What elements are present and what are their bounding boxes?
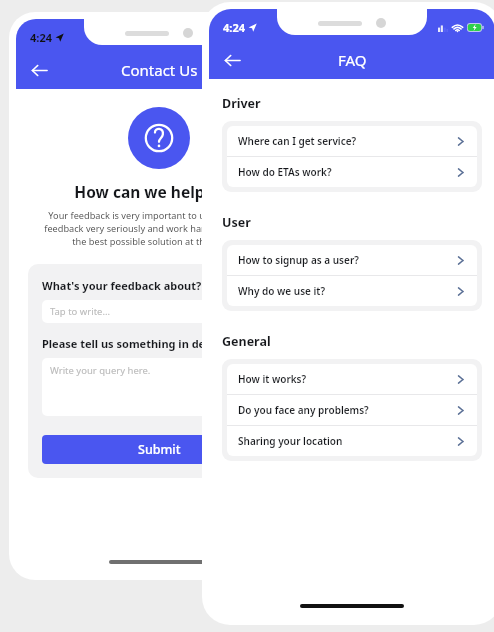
button[interactable]: How do ETAs work?	[227, 157, 477, 187]
staticText: 4:24	[223, 20, 245, 35]
button[interactable]: Write your query here.	[42, 358, 276, 416]
staticText: Do you face any problems?	[238, 403, 455, 417]
staticText: Tap to write...	[50, 305, 111, 318]
staticText: Driver	[222, 95, 261, 112]
button[interactable]: Why do we use it?	[227, 276, 477, 306]
staticText: How it works?	[238, 372, 455, 386]
button[interactable]: How it works?	[227, 364, 477, 394]
button[interactable]: How to signup as a user?	[227, 245, 477, 275]
staticText: How can we help you?	[74, 181, 245, 202]
button[interactable]: Where can I get service?	[227, 126, 477, 156]
staticText: 4:24	[30, 30, 52, 45]
staticText: How do ETAs work?	[238, 165, 455, 179]
staticText: Submit	[138, 441, 181, 458]
staticText: Please tell us something in detail	[42, 336, 224, 351]
button[interactable]: Tap to write...	[42, 300, 276, 323]
button[interactable]: Do you face any problems?	[227, 395, 477, 425]
staticText: What's your feedback about?	[42, 278, 202, 293]
staticText: FAQ	[338, 50, 367, 70]
button[interactable]: Submit	[42, 435, 276, 464]
button[interactable]: Back	[215, 43, 249, 77]
staticText: How to signup as a user?	[238, 253, 455, 267]
staticText: Contact Us	[121, 60, 198, 80]
staticText: Why do we use it?	[238, 284, 455, 298]
button[interactable]: Sharing your location	[227, 426, 477, 456]
staticText: User	[222, 214, 251, 231]
button[interactable]: Back	[22, 53, 56, 87]
staticText: Your feedback is very important to us. W…	[44, 209, 275, 248]
staticText: Write your query here.	[50, 364, 151, 377]
staticText: Where can I get service?	[238, 134, 455, 148]
staticText: Sharing your location	[238, 434, 455, 448]
staticText: General	[222, 333, 271, 350]
